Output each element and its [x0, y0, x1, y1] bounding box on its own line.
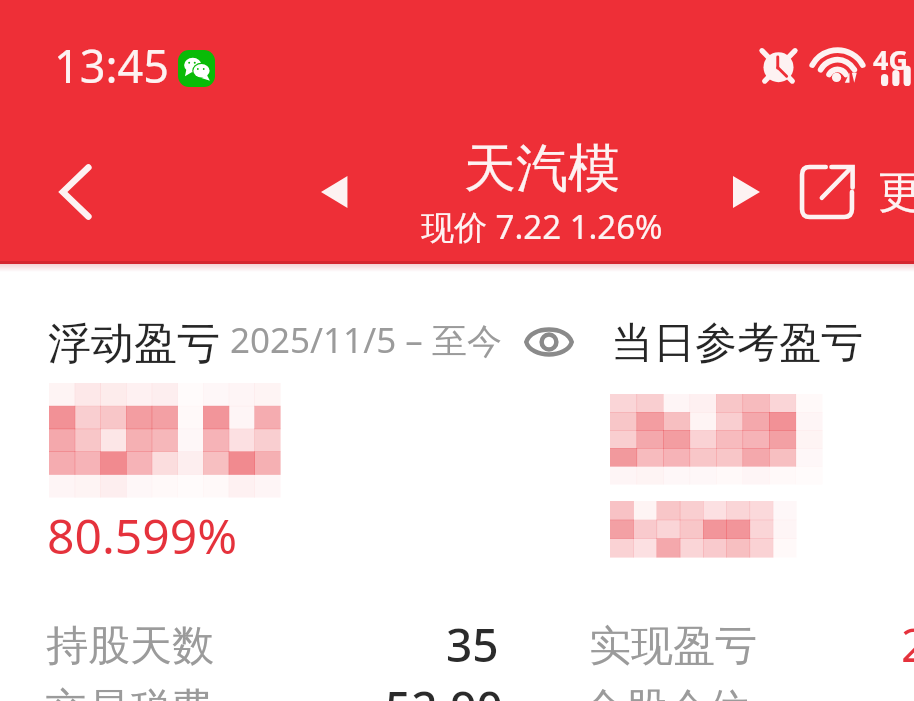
- staticText: 实现盈亏: [589, 620, 757, 673]
- staticText: 全股仓位: [583, 683, 751, 701]
- staticText: 2025/11/5 – 至今: [230, 316, 502, 364]
- staticText: 52.90: [385, 676, 503, 701]
- staticText: 交易税费: [45, 683, 213, 701]
- staticText: 持股天数: [46, 620, 214, 673]
- staticText: 天汽模: [464, 136, 620, 202]
- button[interactable]: Back: [35, 152, 115, 232]
- staticText: 4G: [873, 41, 908, 78]
- staticText: 浮动盈亏: [48, 317, 220, 371]
- button[interactable]: Previous stock: [294, 152, 374, 232]
- staticText: 当日参考盈亏: [611, 317, 863, 370]
- button[interactable]: Next stock: [706, 152, 786, 232]
- button[interactable]: Share: [787, 152, 867, 232]
- staticText: 80.599%: [47, 503, 238, 568]
- button[interactable]: More: [868, 152, 914, 232]
- button[interactable]: Toggle visibility: [518, 316, 580, 368]
- staticText: 2: [901, 613, 914, 676]
- staticText: 现价 7.22 1.26%: [421, 204, 663, 249]
- staticText: 更多: [878, 165, 914, 220]
- staticText: 35: [446, 613, 499, 676]
- staticText: 13:45: [54, 35, 170, 96]
